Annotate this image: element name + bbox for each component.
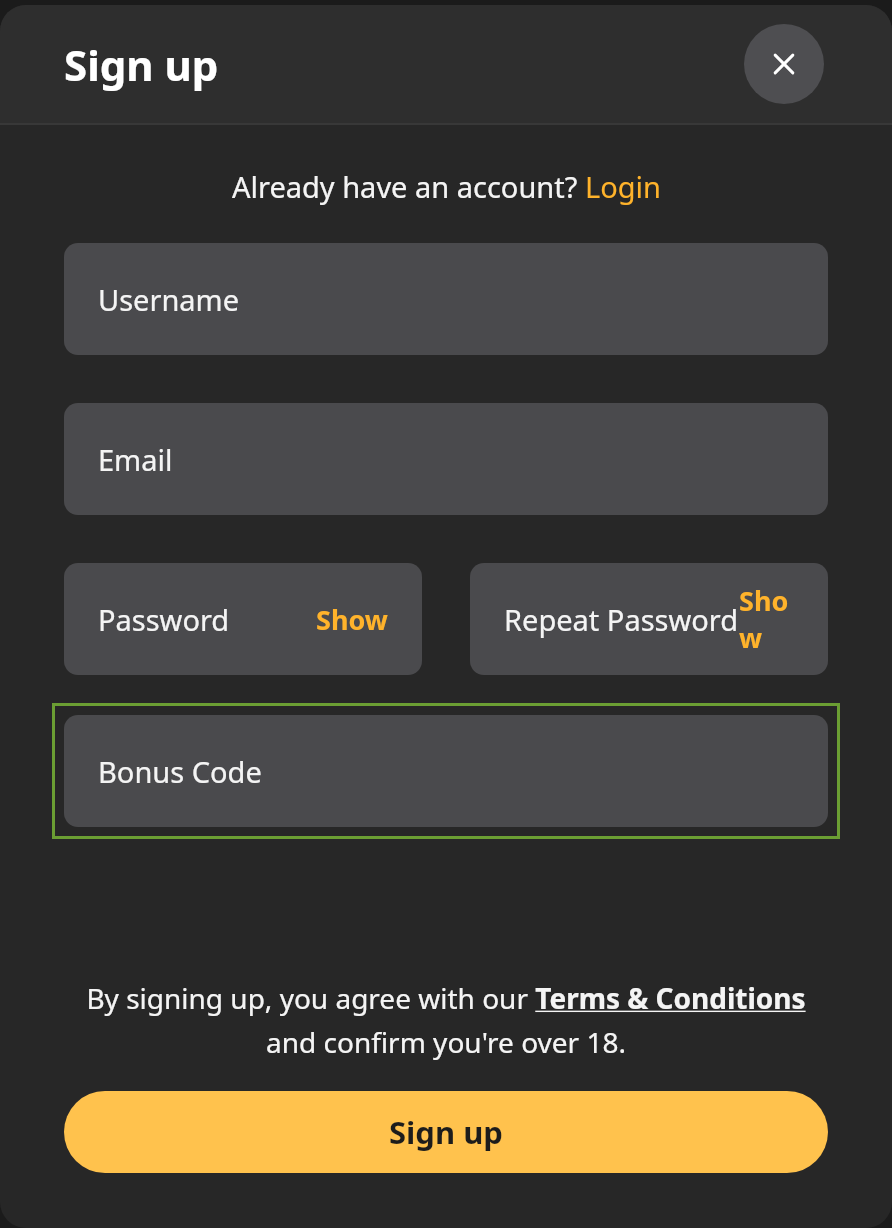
- button[interactable]: Password: [64, 563, 422, 675]
- button[interactable]: Show: [739, 582, 794, 656]
- button[interactable]: Bonus Code: [64, 715, 828, 827]
- button[interactable]: Show: [316, 601, 388, 638]
- button[interactable]: Repeat Password: [470, 563, 828, 675]
- staticText: Password: [98, 600, 230, 639]
- staticText: Sign up: [389, 1111, 503, 1153]
- staticText: Already have an account?: [232, 167, 585, 206]
- staticText: Repeat Password: [504, 600, 739, 639]
- staticText: Username: [98, 280, 240, 319]
- staticText: Email: [98, 440, 173, 479]
- staticText: Sign up: [64, 36, 219, 93]
- button[interactable]: Username: [64, 243, 828, 355]
- button[interactable]: Login: [585, 167, 661, 206]
- button[interactable]: Close: [744, 24, 824, 104]
- staticText: Bonus Code: [98, 752, 262, 791]
- button[interactable]: Email: [64, 403, 828, 515]
- button[interactable]: Sign up: [64, 1091, 828, 1173]
- staticText: By signing up, you agree with our Terms …: [70, 979, 822, 1061]
